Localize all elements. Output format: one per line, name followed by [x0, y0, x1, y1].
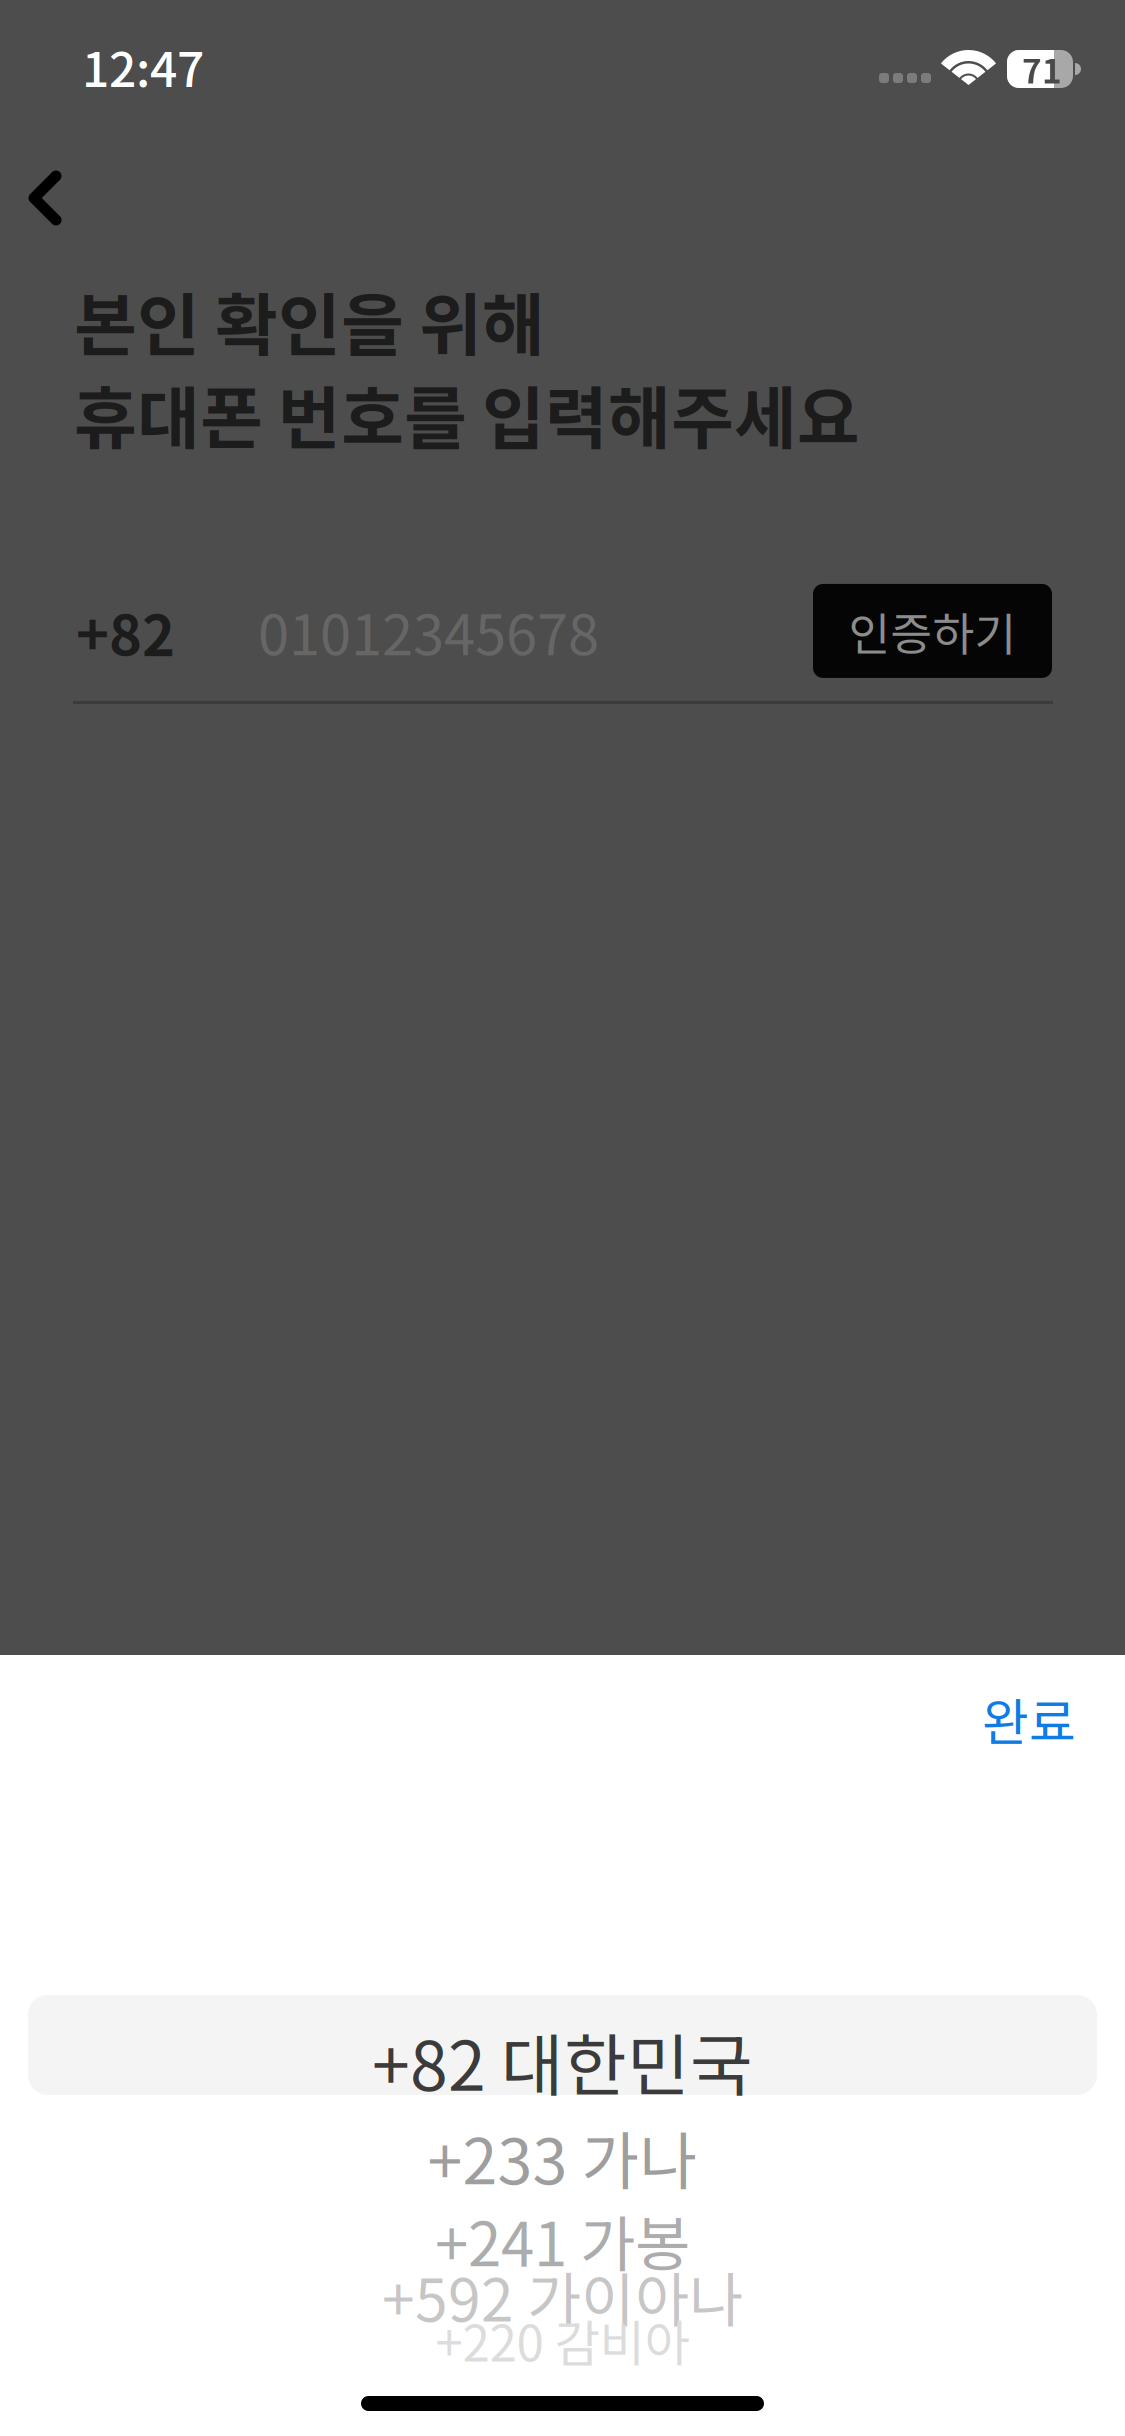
staticText: 완료: [982, 1682, 1076, 1756]
staticText: +233 가나: [427, 2112, 697, 2202]
button[interactable]: Back: [0, 132, 111, 264]
button[interactable]: 완료: [952, 1655, 1106, 1783]
staticText: +592 가이아나: [382, 2253, 743, 2338]
staticText: +241 가봉: [435, 2197, 690, 2283]
button[interactable]: 인증하기: [813, 584, 1052, 678]
staticText: +82 대한민국: [372, 2012, 753, 2110]
staticText: 인증하기: [848, 598, 1016, 664]
staticText: +82: [76, 590, 175, 671]
staticText: 휴대폰 번호를 입력해주세요: [74, 364, 860, 463]
staticText: 본인 확인을 위해: [74, 271, 545, 369]
staticText: 01012345678: [258, 590, 599, 671]
staticText: 71: [1022, 45, 1062, 93]
staticText: 12:47: [82, 31, 204, 101]
staticText: +220 감비아: [435, 2304, 689, 2376]
